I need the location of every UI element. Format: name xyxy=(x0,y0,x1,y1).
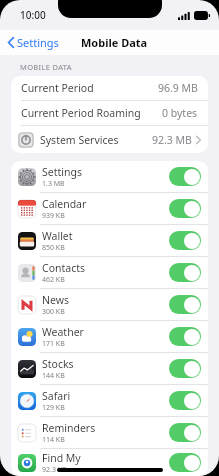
staticText: Stocks xyxy=(42,357,74,371)
staticText: Settings xyxy=(17,35,59,50)
button[interactable]: Toggle mobile data for Settings xyxy=(169,167,201,186)
staticText: 10:00 xyxy=(20,8,46,22)
staticText: System Services xyxy=(40,133,119,147)
staticText: News xyxy=(42,293,69,307)
staticText: Mobile Data xyxy=(81,35,148,50)
button[interactable]: Reminders xyxy=(11,417,208,448)
button[interactable]: Toggle mobile data for Wallet xyxy=(169,231,201,250)
button[interactable]: Current Period xyxy=(11,76,208,100)
staticText: 92.3 KB xyxy=(42,465,67,475)
staticText: 129 KB xyxy=(42,403,65,413)
staticText: 300 KB xyxy=(42,307,65,317)
button[interactable]: Toggle mobile data for News xyxy=(169,295,201,314)
button[interactable]: Toggle mobile data for Find My xyxy=(169,453,201,472)
staticText: 850 KB xyxy=(42,243,65,253)
button[interactable]: Safari xyxy=(11,385,208,416)
staticText: Wallet xyxy=(42,229,73,243)
button[interactable]: Toggle mobile data for Stocks xyxy=(169,359,201,378)
staticText: Calendar xyxy=(42,197,87,211)
staticText: Contacts xyxy=(42,261,86,275)
button[interactable]: Toggle mobile data for Calendar xyxy=(169,199,201,218)
staticText: 92.3 MB xyxy=(152,133,192,147)
staticText: 0 bytes xyxy=(162,106,198,120)
button[interactable]: Calendar xyxy=(11,193,208,224)
staticText: 171 KB xyxy=(42,339,65,349)
staticText: Reminders xyxy=(42,421,96,435)
staticText: Current Period Roaming xyxy=(21,106,141,120)
staticText: 462 KB xyxy=(42,275,65,285)
button[interactable]: System Services xyxy=(11,126,208,153)
button[interactable]: Toggle mobile data for Reminders xyxy=(169,423,201,442)
button[interactable]: Toggle mobile data for Weather xyxy=(169,327,201,346)
button[interactable]: Contacts xyxy=(11,257,208,288)
staticText: Find My xyxy=(42,451,81,465)
button[interactable]: Find My xyxy=(11,449,208,476)
staticText: 1.3 MB xyxy=(42,179,65,189)
staticText: 96.9 MB xyxy=(158,81,198,95)
button[interactable]: Wallet xyxy=(11,225,208,256)
button[interactable]: Weather xyxy=(11,321,208,352)
staticText: 114 KB xyxy=(42,435,65,445)
staticText: 144 KB xyxy=(42,371,65,381)
staticText: Weather xyxy=(42,325,84,339)
button[interactable]: Toggle mobile data for Contacts xyxy=(169,263,201,282)
staticText: Settings xyxy=(42,165,82,179)
staticText: Current Period xyxy=(21,81,94,95)
button[interactable]: Settings xyxy=(11,161,208,192)
button[interactable]: Settings xyxy=(5,31,62,54)
button[interactable]: Current Period Roaming xyxy=(11,101,208,125)
staticText: 939 KB xyxy=(42,211,65,221)
button[interactable]: Stocks xyxy=(11,353,208,384)
button[interactable]: Toggle mobile data for Safari xyxy=(169,391,201,410)
staticText: MOBILE DATA xyxy=(20,62,73,72)
staticText: Safari xyxy=(42,389,71,403)
button[interactable]: News xyxy=(11,289,208,320)
